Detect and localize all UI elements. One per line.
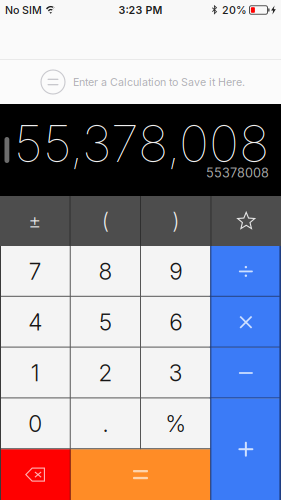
- staticText: 2: [98, 359, 112, 387]
- staticText: ±: [28, 209, 41, 233]
- staticText: 3:23 PM: [118, 3, 162, 16]
- button[interactable]: Close parenthesis: [141, 196, 210, 246]
- button[interactable]: 2: [70, 348, 140, 398]
- button[interactable]: 8: [70, 246, 140, 297]
- staticText: 55,378,008: [14, 113, 269, 174]
- button[interactable]: .: [70, 398, 140, 449]
- staticText: 4: [28, 308, 42, 336]
- button[interactable]: 0: [0, 398, 70, 449]
- button[interactable]: 7: [0, 246, 70, 297]
- staticText: (: [102, 208, 109, 234]
- staticText: 7: [29, 258, 42, 285]
- button[interactable]: 6: [140, 297, 211, 348]
- button[interactable]: Plus minus: [0, 196, 70, 246]
- button[interactable]: Add: [211, 398, 281, 500]
- staticText: 8: [98, 258, 112, 285]
- button[interactable]: Multiply: [211, 297, 281, 348]
- button[interactable]: Divide: [211, 246, 281, 297]
- staticText: 5: [99, 308, 112, 336]
- staticText: 6: [169, 308, 182, 336]
- staticText: 0: [28, 410, 42, 437]
- button[interactable]: 3: [140, 348, 211, 398]
- button[interactable]: 5: [70, 297, 140, 348]
- staticText: 55378008: [206, 165, 269, 181]
- staticText: .: [102, 410, 108, 437]
- staticText: ): [172, 208, 179, 234]
- button[interactable]: Favorite: [211, 196, 281, 246]
- staticText: 1: [31, 359, 40, 387]
- button[interactable]: Enter a Calculation to Save it Here.: [0, 60, 281, 104]
- button[interactable]: Equals: [70, 449, 211, 500]
- staticText: %: [165, 410, 186, 437]
- button[interactable]: 4: [0, 297, 70, 348]
- button[interactable]: %: [140, 398, 211, 449]
- staticText: Enter a Calculation to Save it Here.: [73, 75, 245, 88]
- button[interactable]: 9: [140, 246, 211, 297]
- button[interactable]: 1: [0, 348, 70, 398]
- staticText: 3: [169, 359, 183, 387]
- staticText: No SIM: [5, 3, 42, 16]
- button[interactable]: Open parenthesis: [70, 196, 140, 246]
- staticText: 20%: [222, 3, 247, 16]
- button[interactable]: Delete: [0, 449, 70, 500]
- button[interactable]: Subtract: [211, 348, 281, 398]
- staticText: 9: [169, 258, 182, 285]
